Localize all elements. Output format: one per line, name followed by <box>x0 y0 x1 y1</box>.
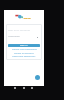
staticText: Forgot your password? <box>12 48 37 51</box>
button[interactable]: Help <box>35 75 40 80</box>
staticText: Create an account <box>14 52 34 55</box>
button[interactable]: Create an account <box>6 52 42 55</box>
button[interactable]: Need help signing in? <box>6 55 42 58</box>
staticText: Username <box>8 34 20 37</box>
staticText: Need help signing in? <box>12 55 36 58</box>
staticText: SIGN IN <box>20 44 28 47</box>
staticText: Sign in to continue <box>8 28 30 31</box>
button[interactable]: Forgot your password? <box>6 48 42 51</box>
button[interactable]: SIGN IN <box>8 44 40 47</box>
staticText: m <box>23 13 32 19</box>
